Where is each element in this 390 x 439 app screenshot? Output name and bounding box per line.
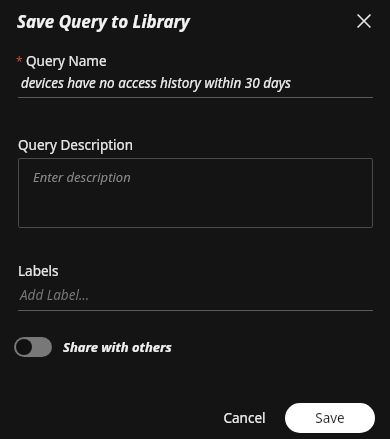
button[interactable]: Close xyxy=(352,9,376,33)
staticText: Share with others xyxy=(63,338,172,356)
staticText: Save xyxy=(315,409,345,427)
staticText: devices have no access history within 30… xyxy=(21,74,291,92)
staticText: Save Query to Library xyxy=(17,10,190,33)
staticText: * xyxy=(16,53,23,69)
staticText: Query Description xyxy=(18,136,134,154)
button[interactable]: Cancel xyxy=(212,403,276,433)
staticText: Cancel xyxy=(223,409,266,427)
button[interactable]: Share with others xyxy=(14,333,172,361)
staticText: Labels xyxy=(18,262,59,280)
button[interactable]: devices have no access history within 30… xyxy=(18,74,373,98)
button[interactable]: Save xyxy=(285,403,375,433)
button[interactable]: Add Label... xyxy=(18,286,373,310)
button[interactable]: Enter description xyxy=(18,158,373,228)
staticText: Add Label... xyxy=(20,286,90,304)
staticText: Query Name xyxy=(26,52,107,70)
staticText: Enter description xyxy=(33,168,131,186)
